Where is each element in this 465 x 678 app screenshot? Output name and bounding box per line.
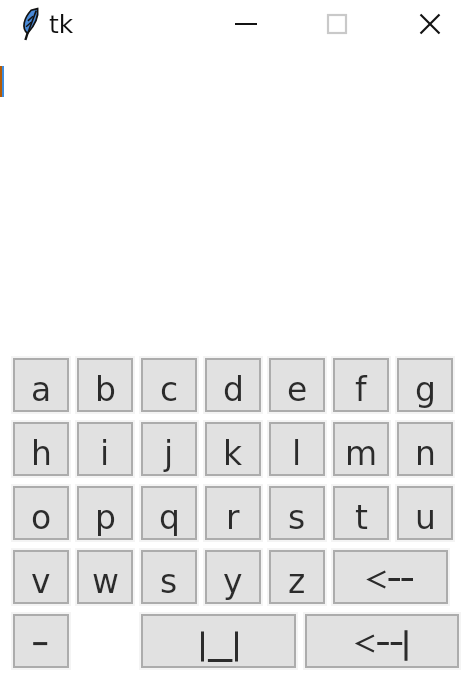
button[interactable]: Close — [382, 0, 465, 48]
staticText: q — [159, 498, 180, 536]
button[interactable]: q — [139, 484, 199, 542]
staticText: n — [415, 434, 436, 472]
button[interactable]: t — [331, 484, 391, 542]
other: tk application icon — [20, 7, 38, 40]
staticText: f — [355, 370, 367, 408]
button[interactable]: v — [11, 548, 71, 606]
staticText: p — [95, 498, 116, 536]
button[interactable]: Maximize — [292, 0, 382, 48]
button[interactable]: n — [395, 420, 455, 478]
button[interactable]: p — [75, 484, 135, 542]
staticText: b — [95, 370, 116, 408]
staticText: r — [226, 498, 240, 536]
staticText: t — [355, 498, 368, 536]
button[interactable]: - — [11, 612, 71, 670]
button[interactable]: e — [267, 356, 327, 414]
staticText: z — [288, 562, 306, 600]
button[interactable]: d — [203, 356, 263, 414]
button[interactable]: b — [75, 356, 135, 414]
staticText: l — [292, 434, 302, 472]
button[interactable]: w — [75, 548, 135, 606]
button[interactable]: u — [395, 484, 455, 542]
staticText: s — [160, 562, 178, 600]
staticText: d — [223, 370, 244, 408]
button[interactable]: c — [139, 356, 199, 414]
staticText: tk — [49, 10, 74, 39]
staticText: s — [288, 498, 306, 536]
staticText: k — [223, 434, 243, 472]
button[interactable]: a — [11, 356, 71, 414]
button[interactable]: f — [331, 356, 391, 414]
staticText: g — [415, 370, 436, 408]
button[interactable]: Text entry — [0, 48, 465, 348]
staticText: o — [31, 498, 52, 536]
staticText: j — [164, 434, 174, 472]
staticText: e — [287, 370, 308, 408]
staticText: c — [160, 370, 179, 408]
staticText: w — [92, 562, 119, 600]
button[interactable]: m — [331, 420, 391, 478]
button[interactable]: o — [11, 484, 71, 542]
button[interactable]: h — [11, 420, 71, 478]
button[interactable]: j — [139, 420, 199, 478]
staticText: a — [31, 370, 52, 408]
staticText: y — [223, 562, 243, 600]
button[interactable]: s — [267, 484, 327, 542]
staticText: v — [31, 562, 51, 600]
button[interactable]: y — [203, 548, 263, 606]
button[interactable]: z — [267, 548, 327, 606]
staticText: m — [345, 434, 378, 472]
button[interactable]: Backspace — [331, 548, 450, 606]
staticText: u — [415, 498, 436, 536]
button[interactable]: Minimize — [200, 0, 292, 48]
staticText: i — [100, 434, 110, 472]
button[interactable]: g — [395, 356, 455, 414]
button[interactable]: l — [267, 420, 327, 478]
button[interactable]: i — [75, 420, 135, 478]
button[interactable]: Enter — [303, 612, 461, 670]
button[interactable]: s — [139, 548, 199, 606]
staticText: h — [31, 434, 52, 472]
button[interactable]: Space — [139, 612, 298, 670]
button[interactable]: k — [203, 420, 263, 478]
button[interactable]: r — [203, 484, 263, 542]
